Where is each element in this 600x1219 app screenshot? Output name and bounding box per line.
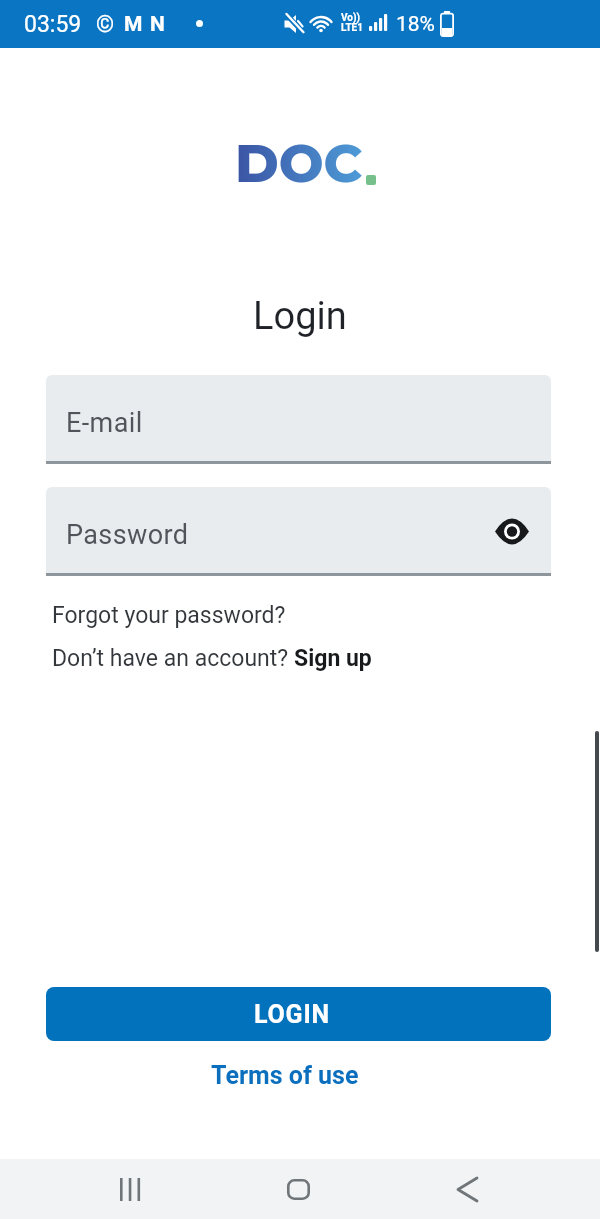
staticText: Terms of use — [211, 1061, 359, 1090]
staticText: Forgot your password? — [52, 602, 286, 629]
button[interactable] — [107, 1164, 155, 1214]
staticText: Password — [66, 519, 189, 551]
button[interactable]: E-mail — [46, 375, 551, 464]
staticText: LOGIN — [254, 1000, 331, 1029]
staticText: N — [150, 12, 165, 37]
staticText: Vo)) — [341, 12, 361, 24]
staticText: M — [124, 12, 143, 37]
staticText: © — [96, 11, 115, 38]
button[interactable]: Password — [46, 487, 551, 576]
button[interactable]: Sign up — [294, 645, 372, 672]
button[interactable] — [443, 1164, 491, 1214]
staticText: E-mail — [66, 407, 143, 439]
staticText: Login — [253, 294, 347, 339]
staticText: 18% — [396, 12, 435, 37]
staticText: Sign up — [294, 645, 372, 672]
button[interactable]: Terms of use — [211, 1061, 359, 1090]
staticText: 03:59 — [24, 11, 82, 38]
staticText: DOC — [235, 131, 363, 196]
staticText: LTE1 — [341, 22, 363, 34]
staticText: Don’t have an account? — [52, 645, 294, 672]
button[interactable]: Forgot your password? — [52, 602, 286, 629]
button[interactable] — [274, 1164, 322, 1214]
button[interactable]: LOGIN — [46, 987, 551, 1041]
button[interactable] — [495, 520, 529, 543]
